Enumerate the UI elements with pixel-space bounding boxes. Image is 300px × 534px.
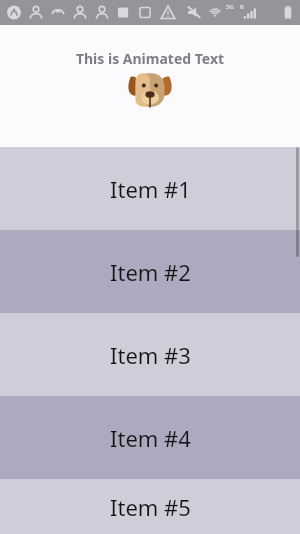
staticText: 3G bbox=[226, 3, 234, 11]
other: Status bar bbox=[0, 0, 300, 25]
staticText: Item #3 bbox=[110, 340, 191, 370]
button[interactable]: Item #4 bbox=[0, 396, 300, 479]
button[interactable]: Item #3 bbox=[0, 313, 300, 396]
staticText: Item #2 bbox=[110, 257, 191, 287]
staticText: R bbox=[240, 3, 244, 11]
staticText: Item #1 bbox=[110, 174, 191, 204]
other: Dog emoji bbox=[128, 68, 172, 112]
staticText: This is Animated Text bbox=[0, 49, 300, 68]
button[interactable]: Item #1 bbox=[0, 147, 300, 230]
staticText: Item #5 bbox=[110, 492, 191, 522]
button[interactable]: Item #5 bbox=[0, 479, 300, 534]
staticText: Item #4 bbox=[110, 423, 191, 453]
button[interactable]: Item #2 bbox=[0, 230, 300, 313]
